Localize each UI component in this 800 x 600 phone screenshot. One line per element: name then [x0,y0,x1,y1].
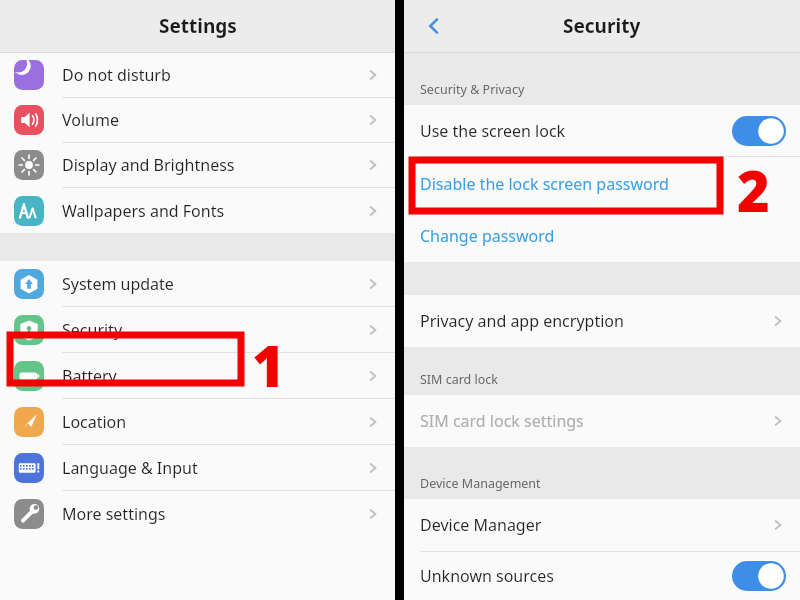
button[interactable]: Back [404,0,464,52]
staticText: Language & Input [62,457,198,479]
staticText: Location [62,411,127,433]
button[interactable]: Display and Brightness [0,143,395,188]
staticText: System update [62,273,174,295]
staticText: SIM card lock [420,371,499,388]
staticText: Settings [159,13,237,39]
button[interactable]: Wallpapers and Fonts [0,188,395,233]
button[interactable]: Security [0,307,395,353]
staticText: Battery [62,365,117,387]
staticText: Use the screen lock [420,120,566,142]
staticText: Security [62,319,123,341]
button[interactable]: Disable the lock screen password [404,157,800,210]
staticText: Unknown sources [420,565,554,587]
button[interactable]: Device Manager [404,499,800,552]
staticText: Device Manager [420,514,542,536]
staticText: Security & Privacy [420,81,525,98]
staticText: Security [563,13,641,39]
staticText: 2 [737,152,770,228]
button[interactable]: SIM card lock settings [404,395,800,447]
button[interactable]: Battery [0,353,395,399]
staticText: Do not disturb [62,64,171,86]
button[interactable]: Do not disturb [0,53,395,98]
staticText: Display and Brightness [62,154,235,176]
staticText: Change password [420,225,555,247]
button[interactable]: Privacy and app encryption [404,295,800,347]
button[interactable]: Volume [0,98,395,143]
staticText: 1 [252,327,285,403]
button[interactable]: Location [0,399,395,445]
staticText: Volume [62,109,119,131]
button[interactable]: System update [0,261,395,307]
button[interactable]: Use the screen lock [404,105,800,157]
staticText: Device Management [420,475,541,492]
staticText: Disable the lock screen password [420,173,669,195]
staticText: More settings [62,503,166,525]
staticText: Privacy and app encryption [420,310,624,332]
staticText: SIM card lock settings [420,410,584,432]
button[interactable]: Language & Input [0,445,395,491]
button[interactable]: Unknown sources [404,552,800,600]
staticText: Wallpapers and Fonts [62,200,225,222]
button[interactable]: More settings [0,491,395,537]
button[interactable]: Change password [404,210,800,262]
